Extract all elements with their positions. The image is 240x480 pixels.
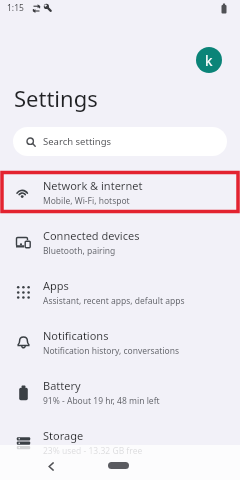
button[interactable]: Notifications	[0, 317, 240, 367]
staticText: Connected devices	[43, 228, 140, 243]
button[interactable]: Battery	[0, 367, 240, 417]
staticText: Apps	[43, 278, 69, 293]
staticText: Network & internet	[43, 178, 143, 193]
staticText: Bluetooth, pairing	[43, 245, 116, 257]
staticText: Storage	[43, 428, 84, 443]
staticText: Assistant, recent apps, default apps	[43, 295, 185, 307]
button[interactable]	[108, 462, 129, 469]
staticText: k	[205, 51, 213, 70]
button[interactable]: Connected devices	[0, 217, 240, 267]
staticText: Notifications	[43, 328, 109, 343]
button[interactable]: Apps	[0, 267, 240, 317]
button[interactable]: k	[196, 47, 222, 73]
staticText: Notification history, conversations	[43, 345, 180, 357]
button[interactable]: Network & internet	[0, 167, 240, 217]
staticText: 23% used - 13.32 GB free	[43, 445, 143, 457]
staticText: Search settings	[43, 135, 112, 148]
staticText: 91% - About 19 hr, 48 min left	[43, 395, 160, 407]
button[interactable]: Storage	[0, 417, 240, 467]
staticText: Settings	[14, 83, 98, 113]
staticText: Mobile, Wi-Fi, hotspot	[43, 195, 130, 207]
staticText: Battery	[43, 378, 81, 393]
staticText: 1:15	[7, 2, 24, 14]
button[interactable]	[41, 456, 61, 476]
button[interactable]: Search settings	[13, 127, 227, 156]
